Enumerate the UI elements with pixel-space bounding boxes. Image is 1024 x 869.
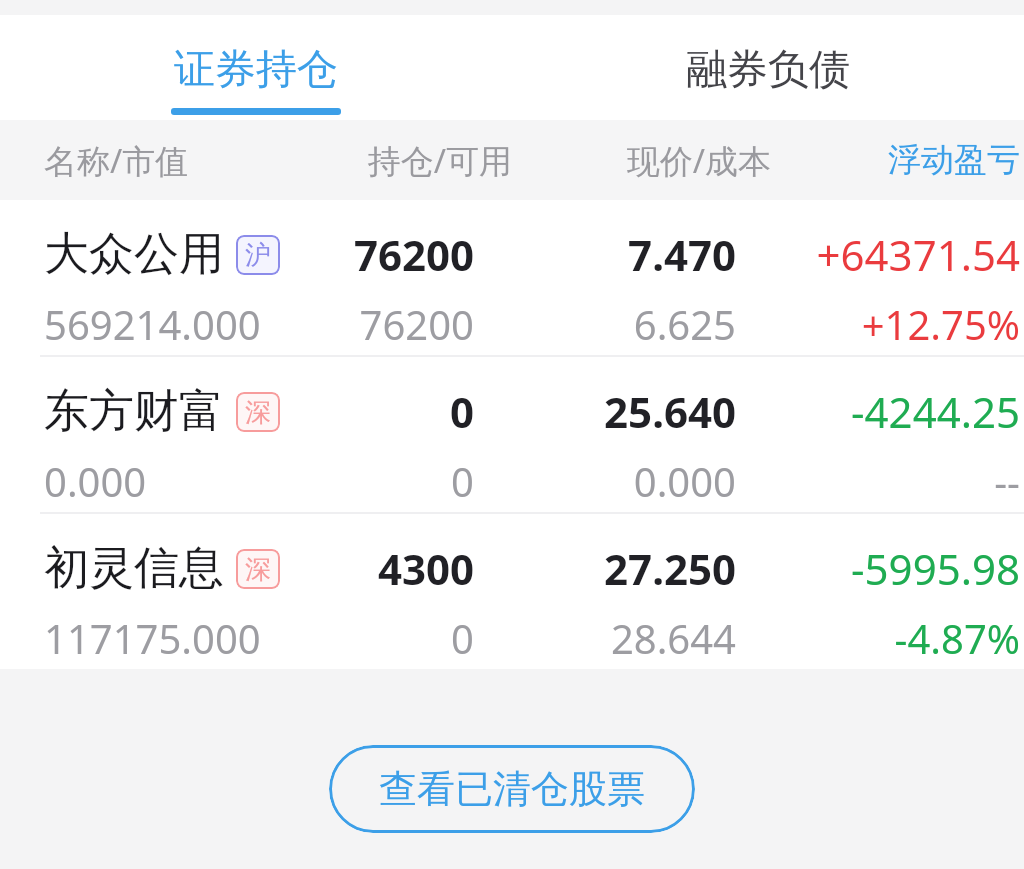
staticText: 浮动盈亏 <box>875 139 1020 181</box>
staticText: 27.250 <box>574 540 736 597</box>
staticText: +64371.54 <box>764 226 1020 283</box>
staticText: 28.644 <box>574 611 736 665</box>
staticText: 0 <box>314 611 474 665</box>
staticText: 0.000 <box>44 454 147 508</box>
staticText: 深 <box>245 396 271 429</box>
staticText: 东方财富 <box>44 383 224 440</box>
staticText: 大众公用 <box>44 226 224 283</box>
staticText: 0 <box>314 383 474 440</box>
staticText: 569214.000 <box>44 297 261 351</box>
staticText: 4300 <box>314 540 474 597</box>
staticText: -4244.25 <box>764 383 1020 440</box>
staticText: 6.625 <box>574 297 736 351</box>
staticText: 7.470 <box>574 226 736 283</box>
staticText: -4.87% <box>764 611 1020 665</box>
staticText: 证券持仓 <box>174 44 338 96</box>
staticText: 融券负债 <box>686 44 850 96</box>
staticText: 名称/市值 <box>44 138 189 183</box>
staticText: 0.000 <box>574 454 736 508</box>
button[interactable]: 融券负债 <box>512 15 1024 120</box>
staticText: 深 <box>245 553 271 586</box>
staticText: 查看已清仓股票 <box>379 765 645 813</box>
staticText: 0 <box>314 454 474 508</box>
button[interactable]: 证券持仓 <box>0 15 512 120</box>
staticText: 持仓/可用 <box>362 138 512 183</box>
button[interactable]: 东方财富 <box>0 357 1024 512</box>
staticText: 现价/成本 <box>622 138 771 183</box>
staticText: -5995.98 <box>764 540 1020 597</box>
staticText: 沪 <box>245 239 271 272</box>
staticText: 76200 <box>314 297 474 351</box>
staticText: 117175.000 <box>44 611 261 665</box>
staticText: 初灵信息 <box>44 540 224 597</box>
button[interactable]: 初灵信息 <box>0 514 1024 669</box>
staticText: +12.75% <box>764 297 1020 351</box>
button[interactable]: 查看已清仓股票 <box>329 745 695 833</box>
button[interactable]: 大众公用 <box>0 200 1024 355</box>
staticText: 25.640 <box>574 383 736 440</box>
staticText: 76200 <box>314 226 474 283</box>
staticText: -- <box>764 454 1020 508</box>
